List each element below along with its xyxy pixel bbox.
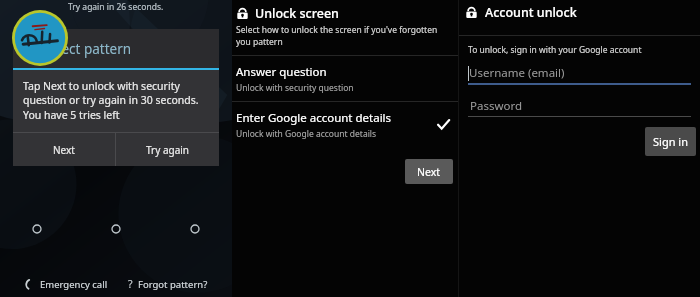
staticText: Try again <box>146 143 190 157</box>
staticText: Forgot pattern? <box>138 278 208 291</box>
staticText: Select how to unlock the screen if you'v… <box>236 24 454 48</box>
button[interactable]: ? <box>124 274 212 294</box>
staticText: Enter Google account details <box>236 110 392 126</box>
staticText: Account unlock <box>485 4 577 21</box>
button[interactable]: Password <box>468 98 691 117</box>
other: Selected <box>437 118 450 131</box>
staticText: Incorrect pattern <box>23 40 132 58</box>
staticText: ? <box>128 277 133 291</box>
button[interactable]: Enter Google account details <box>232 102 458 147</box>
button[interactable]: Next <box>13 133 115 166</box>
button[interactable]: Sign in <box>645 127 696 156</box>
staticText: Unlock with Google account details <box>236 128 377 140</box>
button[interactable]: Emergency call <box>21 275 112 294</box>
button[interactable]: Try again <box>116 133 219 166</box>
staticText: Answer question <box>236 64 327 80</box>
button[interactable]: Answer question <box>232 56 458 101</box>
staticText: Password <box>470 98 523 114</box>
button[interactable]: Next <box>405 159 453 184</box>
staticText: Sign in <box>653 134 688 149</box>
staticText: Tap Next to unlock with security questio… <box>23 79 205 122</box>
staticText: Emergency call <box>40 278 108 291</box>
staticText: Unlock screen <box>255 5 339 22</box>
staticText: Try again in 26 seconds. <box>68 1 164 13</box>
staticText: To unlock, sign in with your Google acco… <box>468 44 642 56</box>
button[interactable]: Username (email) <box>468 65 691 85</box>
staticText: Username (email) <box>469 65 565 81</box>
staticText: Next <box>53 143 75 157</box>
staticText: Unlock with security question <box>236 82 354 94</box>
staticText: Next <box>417 165 441 179</box>
